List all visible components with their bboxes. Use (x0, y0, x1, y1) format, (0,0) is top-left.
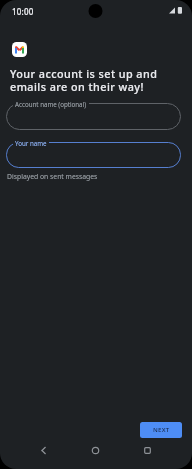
button[interactable] (33, 440, 54, 461)
staticText: Account name (optional) (15, 100, 87, 108)
staticText: 10:00 (12, 6, 34, 17)
staticText: NEXT (153, 426, 170, 434)
staticText: Your name (15, 139, 47, 147)
button[interactable]: NEXT (140, 422, 182, 438)
button[interactable] (137, 440, 158, 461)
button[interactable] (6, 142, 181, 168)
button[interactable] (85, 440, 106, 461)
button[interactable] (6, 103, 181, 130)
staticText: Your account is set up and emails are on… (10, 66, 158, 94)
staticText: Displayed on sent messages (7, 172, 98, 181)
